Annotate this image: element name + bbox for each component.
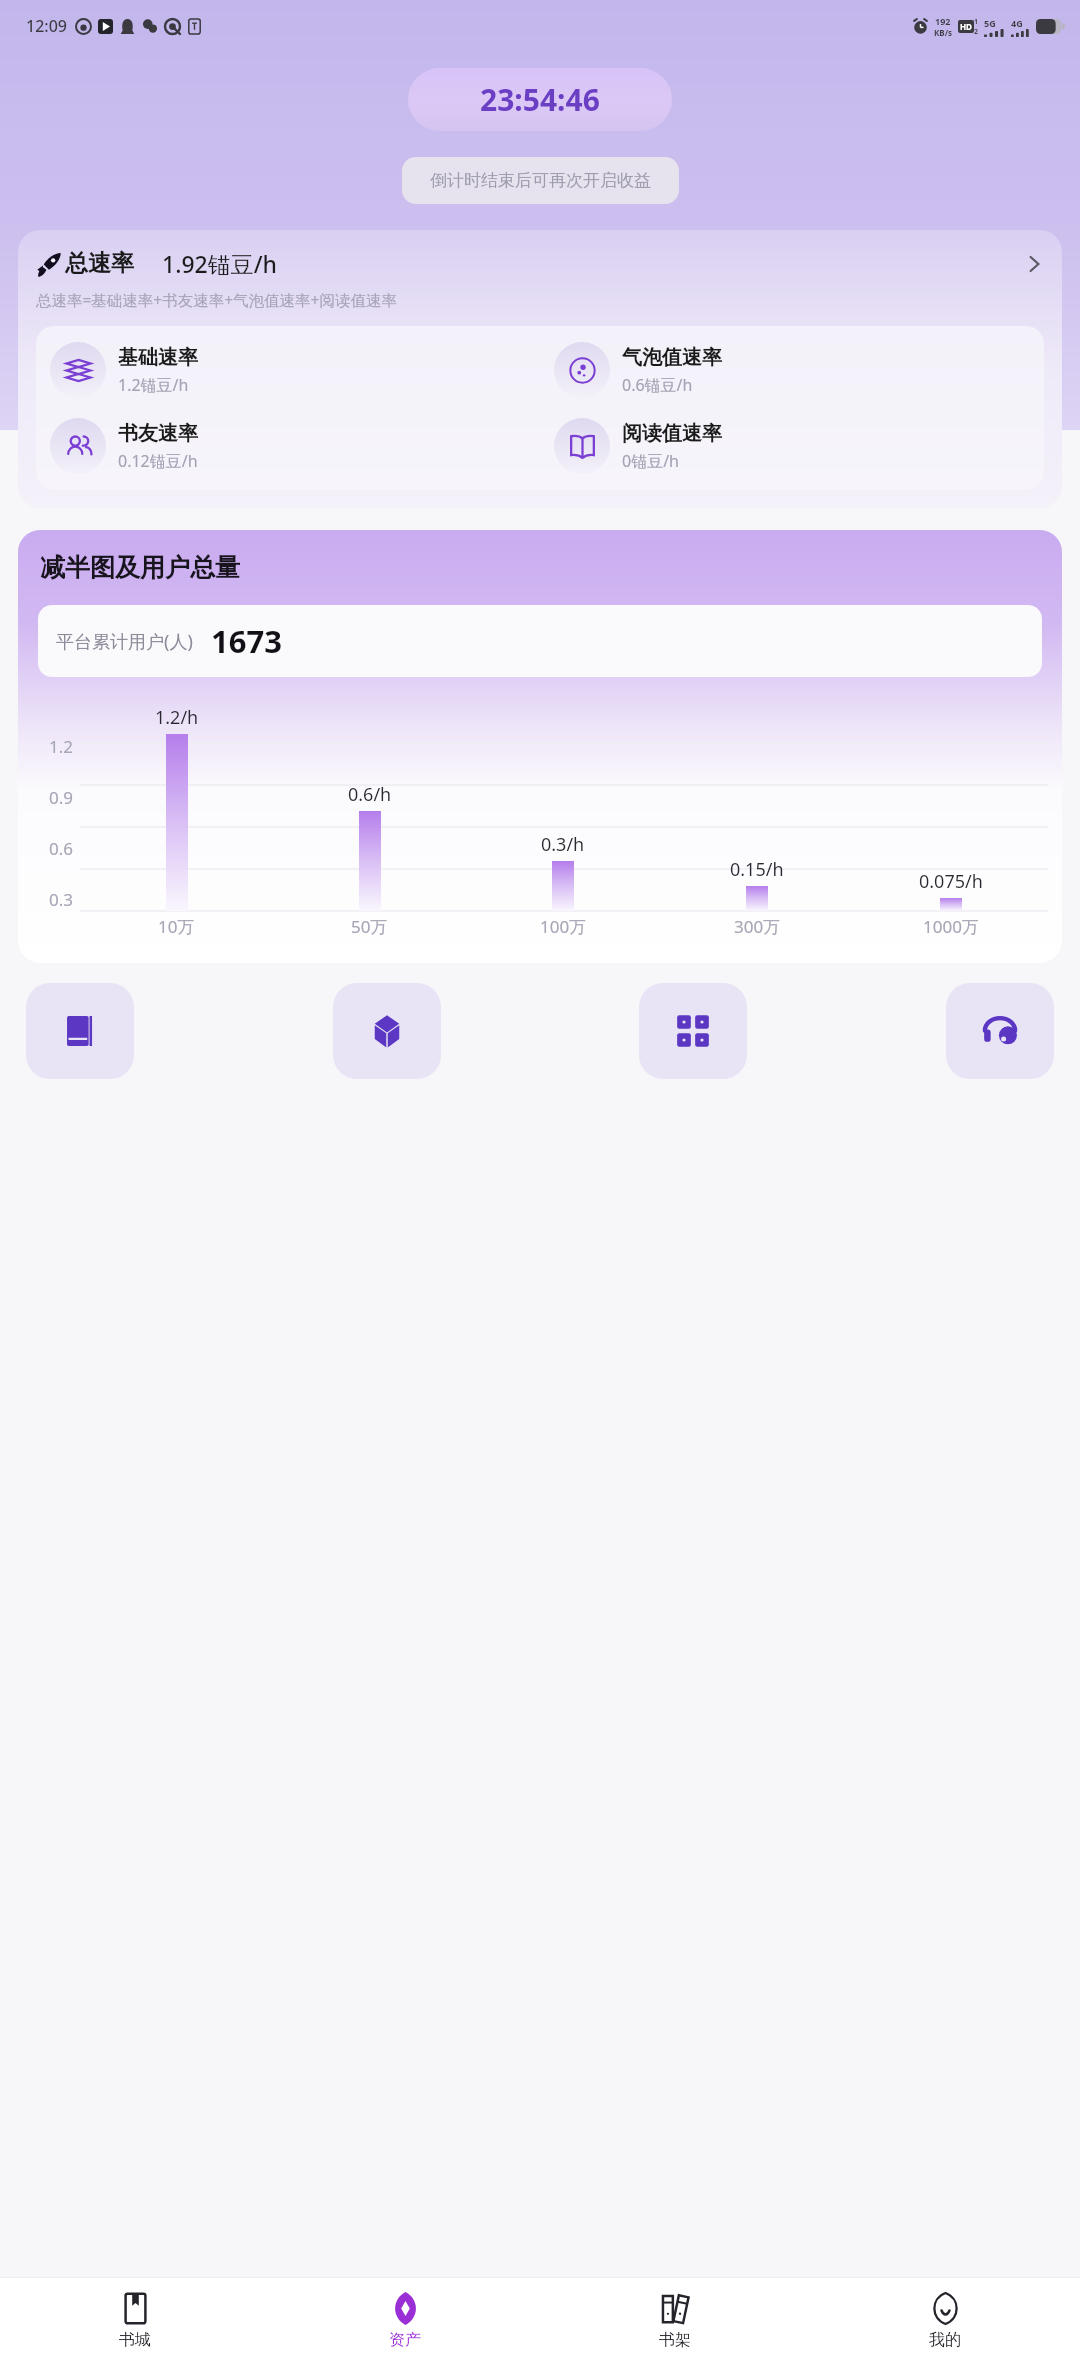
button[interactable]: 23:54:46 (408, 68, 672, 131)
staticText: HD (960, 21, 972, 32)
staticText: 0.075/h (919, 869, 983, 894)
staticText: 1673 (211, 620, 282, 662)
staticText: 1 (974, 17, 979, 27)
button[interactable]: 书友速率 (50, 418, 540, 474)
staticText: 总速率 (65, 249, 134, 278)
staticText: 0.12锚豆/h (118, 450, 198, 472)
staticText: 资产 (389, 2330, 421, 2350)
staticText: 基础速率 (118, 345, 198, 370)
staticText: 平台累计用户(人) (56, 629, 193, 654)
staticText: 0锚豆/h (622, 450, 679, 472)
button[interactable]: 我的 (810, 2278, 1080, 2364)
staticText: 1.2/h (155, 705, 199, 730)
staticText: 总速率=基础速率+书友速率+气泡值速率+阅读值速率 (36, 289, 397, 310)
staticText: 0.9 (49, 786, 74, 809)
staticText: 2 (974, 27, 979, 37)
button[interactable]: 平台累计用户(人) (38, 605, 1042, 677)
staticText: KB/s (934, 27, 952, 38)
staticText: 1000万 (923, 915, 979, 938)
button[interactable]: Scan grid (639, 983, 747, 1079)
staticText: 4G (1011, 17, 1023, 29)
staticText: 阅读值速率 (622, 421, 722, 446)
button[interactable]: 倒计时结束后可再次开启收益 (430, 170, 651, 191)
staticText: 50万 (351, 915, 388, 938)
staticText: 0.6 (49, 837, 74, 860)
button[interactable]: 阅读值速率 (554, 418, 1044, 474)
staticText: 1.92锚豆/h (162, 248, 278, 279)
staticText: 10万 (158, 915, 195, 938)
staticText: 1.2 (49, 735, 74, 758)
button[interactable]: 气泡值速率 (554, 342, 1044, 398)
staticText: 0.3/h (541, 832, 585, 857)
button[interactable]: Book store (26, 983, 134, 1079)
staticText: 0.15/h (730, 857, 784, 882)
staticText: 0.6锚豆/h (622, 374, 693, 396)
button[interactable]: 总速率 (36, 248, 1044, 279)
staticText: 1.2锚豆/h (118, 374, 189, 396)
staticText: 0.3 (49, 888, 74, 911)
staticText: 我的 (929, 2330, 961, 2350)
button[interactable]: 资产 (270, 2278, 540, 2364)
staticText: 0.6/h (348, 782, 392, 807)
staticText: 气泡值速率 (622, 345, 722, 370)
staticText: 12:09 (26, 15, 67, 37)
staticText: 100万 (540, 915, 587, 938)
staticText: 300万 (734, 915, 781, 938)
staticText: 5G (984, 17, 996, 29)
button[interactable]: 基础速率 (50, 342, 540, 398)
button[interactable]: Support (946, 983, 1054, 1079)
staticText: 书架 (659, 2330, 691, 2350)
staticText: 减半图及用户总量 (40, 552, 240, 583)
button[interactable]: Assets cube (333, 983, 441, 1079)
staticText: 23:54:46 (480, 79, 600, 120)
staticText: 书城 (119, 2330, 151, 2350)
staticText: 倒计时结束后可再次开启收益 (430, 170, 651, 191)
button[interactable]: 书城 (0, 2278, 270, 2364)
staticText: 书友速率 (118, 421, 198, 446)
staticText: 192 (935, 15, 951, 27)
button[interactable]: 书架 (540, 2278, 810, 2364)
